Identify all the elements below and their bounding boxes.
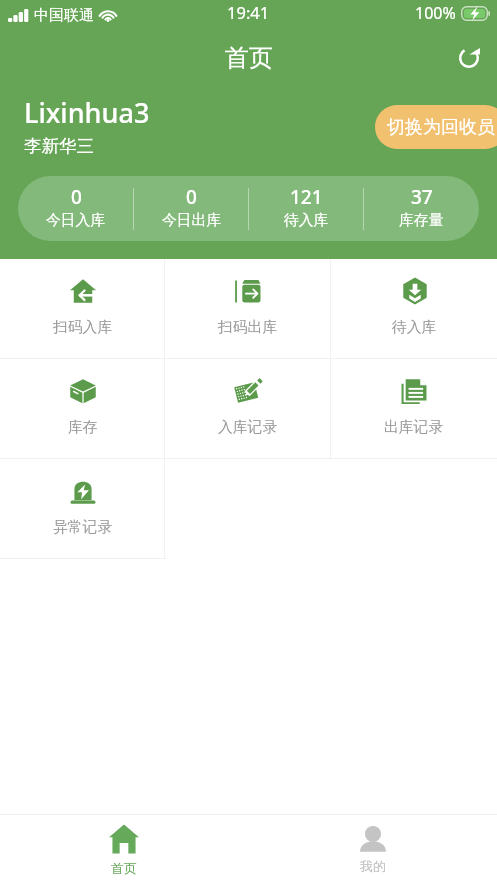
staticText: 37 — [411, 184, 433, 210]
button[interactable]: 扫码入库 — [0, 259, 165, 358]
staticText: 扫码入库 — [53, 318, 113, 337]
staticText: 0 — [71, 184, 82, 210]
staticText: 切换为回收员 — [387, 116, 495, 139]
staticText: 待入库 — [284, 211, 329, 230]
staticText: 中国联通 — [34, 6, 94, 25]
button[interactable]: Refresh — [448, 37, 490, 79]
staticText: 待入库 — [392, 318, 437, 337]
button[interactable]: 扫码出库 — [165, 259, 331, 358]
staticText: 异常记录 — [53, 518, 113, 537]
staticText: 入库记录 — [218, 418, 278, 437]
staticText: 今日出库 — [162, 211, 222, 230]
staticText: 100% — [415, 2, 456, 24]
button[interactable]: 出库记录 — [331, 359, 497, 458]
staticText: 首页 — [111, 860, 137, 876]
button[interactable]: 我的 — [248, 815, 497, 883]
staticText: Lixinhua3 — [24, 94, 150, 131]
staticText: 库存 — [68, 418, 98, 437]
button[interactable]: 切换为回收员 — [375, 105, 497, 149]
button[interactable]: 入库记录 — [165, 359, 331, 458]
staticText: 李新华三 — [24, 135, 94, 157]
staticText: 我的 — [360, 858, 386, 874]
staticText: 首页 — [225, 43, 273, 73]
staticText: 19:41 — [227, 1, 270, 23]
staticText: 库存量 — [399, 211, 444, 230]
button[interactable]: 首页 — [0, 815, 248, 883]
staticText: 0 — [186, 184, 197, 210]
button[interactable]: 待入库 — [331, 259, 497, 358]
button[interactable]: 库存 — [0, 359, 165, 458]
staticText: 扫码出库 — [218, 318, 278, 337]
button[interactable]: 异常记录 — [0, 459, 165, 558]
staticText: 今日入库 — [46, 211, 106, 230]
staticText: 出库记录 — [384, 418, 444, 437]
staticText: 121 — [290, 184, 323, 210]
